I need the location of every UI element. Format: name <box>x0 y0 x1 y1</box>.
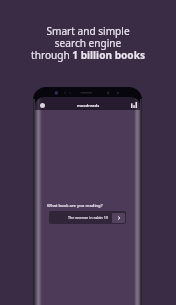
staticText: The woman in cabin 10 <box>68 215 108 220</box>
button[interactable]: Search <box>112 213 125 223</box>
staticText: What book are you reading? <box>47 203 103 209</box>
button[interactable]: Statistics <box>131 102 137 108</box>
button[interactable]: The woman in cabin 10 <box>49 211 126 224</box>
staticText: moodreads <box>77 103 100 108</box>
button[interactable]: Profile <box>40 103 45 108</box>
staticText: Smart and simple search engine through 1… <box>31 24 145 62</box>
